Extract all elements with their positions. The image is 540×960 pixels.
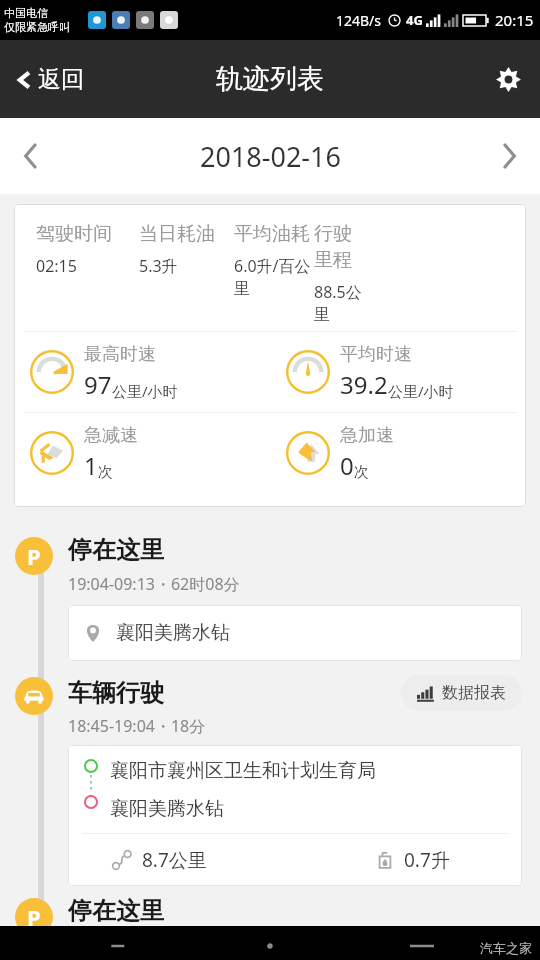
staticText: 5.3升 bbox=[139, 255, 178, 277]
staticText: 平均油耗 bbox=[234, 222, 310, 246]
staticText: 仅限紧急呼叫 bbox=[4, 20, 70, 34]
staticText: 停在这里 bbox=[68, 896, 164, 926]
staticText: 襄阳美腾水钻 bbox=[116, 621, 230, 645]
staticText: 平均时速 bbox=[340, 343, 412, 366]
staticText: 返回 bbox=[38, 65, 84, 94]
staticText: 2018-02-16 bbox=[200, 138, 341, 175]
staticText: P bbox=[27, 902, 41, 932]
staticText: P bbox=[27, 541, 41, 571]
staticText: 124B/s bbox=[336, 11, 382, 30]
button[interactable]: 车辆行驶 bbox=[0, 661, 540, 886]
staticText: 0.7升 bbox=[404, 847, 450, 873]
staticText: 6.0升/百公里 bbox=[234, 255, 314, 299]
button[interactable]: Back bbox=[87, 926, 151, 960]
staticText: 当日耗油 bbox=[139, 222, 215, 246]
staticText: 轨迹列表 bbox=[216, 62, 324, 96]
button[interactable]: 襄阳美腾水钻 bbox=[68, 605, 522, 661]
staticText: 次 bbox=[98, 463, 113, 482]
staticText: 中国电信 bbox=[4, 6, 48, 20]
staticText: 停在这里 bbox=[68, 535, 164, 565]
staticText: 97 bbox=[84, 368, 112, 401]
staticText: 襄阳市襄州区卫生和计划生育局 bbox=[110, 759, 376, 783]
button[interactable]: Previous day bbox=[0, 126, 62, 186]
staticText: 8.7公里 bbox=[142, 847, 207, 873]
staticText: 88.5公里 bbox=[314, 281, 364, 325]
button[interactable]: Home bbox=[237, 926, 303, 960]
staticText: 驾驶时间 bbox=[36, 222, 112, 246]
staticText: 39.2 bbox=[340, 368, 388, 401]
button[interactable]: 数据报表 bbox=[401, 675, 522, 711]
staticText: 数据报表 bbox=[442, 683, 506, 703]
staticText: 4G bbox=[406, 11, 423, 29]
staticText: 公里/小时 bbox=[388, 381, 454, 401]
button[interactable]: P bbox=[0, 519, 540, 661]
button[interactable]: Recent apps bbox=[390, 926, 454, 960]
staticText: 汽车之家 bbox=[480, 940, 532, 956]
staticText: 0 bbox=[340, 449, 354, 482]
button[interactable]: Settings bbox=[477, 52, 540, 107]
staticText: 1 bbox=[84, 449, 98, 482]
staticText: 襄阳美腾水钻 bbox=[110, 797, 224, 821]
staticText: 行驶里程 bbox=[314, 222, 364, 272]
staticText: 车辆行驶 bbox=[68, 678, 164, 708]
staticText: 次 bbox=[354, 463, 369, 482]
button[interactable]: Next day bbox=[478, 126, 540, 186]
button[interactable]: P bbox=[0, 886, 540, 926]
staticText: 20:15 bbox=[495, 10, 534, 30]
staticText: 02:15 bbox=[36, 255, 77, 277]
staticText: 18:45-19:04・18分 bbox=[68, 715, 206, 737]
staticText: 急减速 bbox=[84, 424, 138, 447]
staticText: 19:04-09:13・62时08分 bbox=[68, 573, 240, 595]
staticText: 公里/小时 bbox=[112, 381, 178, 401]
staticText: 急加速 bbox=[340, 424, 394, 447]
staticText: 最高时速 bbox=[84, 343, 156, 366]
button[interactable]: 返回 bbox=[0, 57, 98, 102]
